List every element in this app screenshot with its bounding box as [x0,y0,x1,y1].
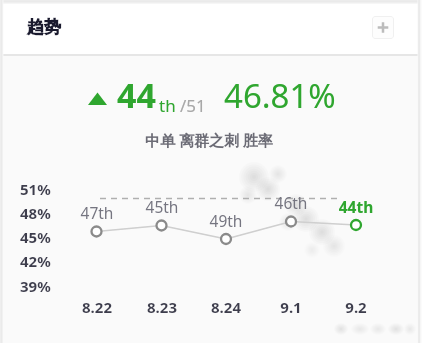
staticText: 45th [137,196,187,217]
staticText: 46.81% [224,73,336,118]
staticText: 9.2 [331,297,381,317]
staticText: 44th [331,196,381,217]
staticText: /51 [180,94,206,117]
staticText: 45% [20,227,51,247]
staticText: 49th [201,210,251,231]
staticText: 44 [117,72,156,118]
staticText: 9.1 [266,297,316,317]
staticText: 47th [72,202,122,223]
staticText: 51% [20,179,51,199]
staticText: 8.24 [201,297,251,317]
staticText: 中单 离群之刺 胜率 [145,130,273,150]
staticText: 42% [20,251,51,271]
staticText: 48% [20,203,51,223]
staticText: 8.23 [137,297,187,317]
staticText: 趋势 [27,17,61,38]
staticText: th [159,94,176,117]
staticText: 46th [266,192,316,213]
button[interactable]: Add [372,16,394,39]
staticText: 8.22 [72,297,122,317]
staticText: 39% [20,276,51,296]
